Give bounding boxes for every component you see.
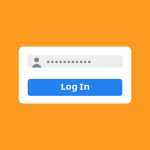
button[interactable]: Log In: [28, 79, 122, 96]
button[interactable]: Username and password: [27, 55, 122, 68]
staticText: Log In: [60, 80, 89, 92]
